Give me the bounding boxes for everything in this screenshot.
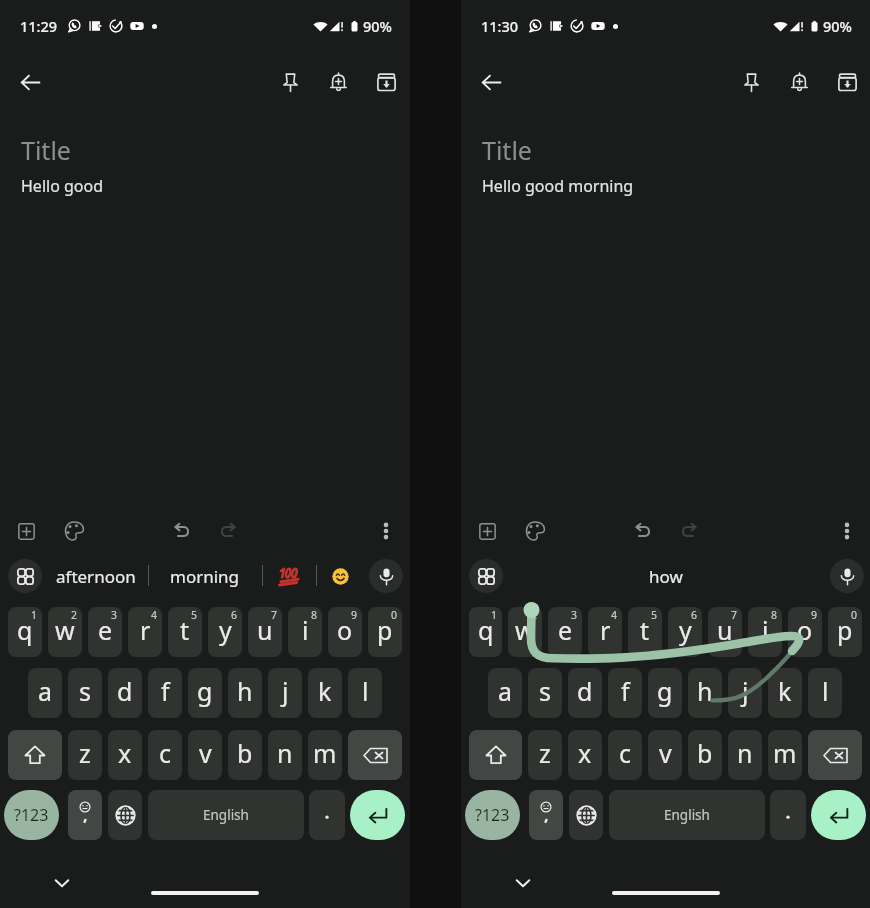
button[interactable]: Language <box>569 790 603 840</box>
button[interactable]: Emoji <box>68 790 102 840</box>
button[interactable]: Period <box>309 790 345 840</box>
button[interactable]: n <box>728 730 762 780</box>
button[interactable]: z <box>68 730 102 780</box>
button[interactable]: u <box>708 607 742 657</box>
button[interactable]: u <box>248 607 282 657</box>
button[interactable]: Backspace <box>348 730 402 780</box>
button[interactable]: More options <box>825 509 869 553</box>
button[interactable]: h <box>688 668 722 718</box>
button[interactable]: x <box>568 730 602 780</box>
button[interactable]: Archive <box>825 60 869 104</box>
staticText: p <box>837 613 853 647</box>
staticText: 7 <box>731 608 738 622</box>
button[interactable]: i <box>288 607 322 657</box>
button[interactable]: Pin <box>729 60 773 104</box>
button[interactable]: Backspace <box>808 730 862 780</box>
button[interactable]: k <box>768 668 802 718</box>
button[interactable]: b <box>228 730 262 780</box>
button[interactable]: o <box>328 607 362 657</box>
button[interactable]: Enter <box>811 790 866 840</box>
button[interactable]: Hundred points emoji <box>278 564 302 588</box>
button[interactable]: p <box>368 607 402 657</box>
button[interactable]: r <box>588 607 622 657</box>
button[interactable]: Smiling face emoji <box>331 567 350 586</box>
button[interactable]: q <box>8 607 42 657</box>
button[interactable]: v <box>648 730 682 780</box>
button[interactable]: y <box>668 607 702 657</box>
button[interactable]: f <box>608 668 642 718</box>
button[interactable]: x <box>108 730 142 780</box>
button[interactable]: r <box>128 607 162 657</box>
button[interactable]: l <box>348 668 382 718</box>
button[interactable]: Reminder <box>777 60 821 104</box>
button[interactable]: Theme <box>513 509 557 553</box>
button[interactable]: s <box>528 668 562 718</box>
button[interactable]: afternoon <box>56 565 136 588</box>
button[interactable]: Archive <box>364 60 408 104</box>
button[interactable]: morning <box>170 565 240 588</box>
button[interactable]: i <box>748 607 782 657</box>
button[interactable]: Period <box>770 790 806 840</box>
button[interactable]: g <box>188 668 222 718</box>
button[interactable]: s <box>68 668 102 718</box>
button[interactable]: Shift <box>8 730 62 780</box>
button[interactable]: Theme <box>52 509 96 553</box>
button[interactable]: f <box>148 668 182 718</box>
button[interactable]: e <box>548 607 582 657</box>
button[interactable]: ?123 <box>4 790 59 840</box>
button[interactable]: Language <box>108 790 142 840</box>
button[interactable]: Redo <box>206 509 250 553</box>
button[interactable]: Add <box>4 509 48 553</box>
staticText: a <box>498 674 513 708</box>
button[interactable]: Undo <box>160 509 204 553</box>
button[interactable]: a <box>28 668 62 718</box>
button[interactable]: ?123 <box>465 790 520 840</box>
button[interactable]: Hide keyboard <box>505 865 541 901</box>
button[interactable]: d <box>568 668 602 718</box>
button[interactable]: z <box>528 730 562 780</box>
button[interactable]: Enter <box>350 790 405 840</box>
button[interactable]: c <box>148 730 182 780</box>
button[interactable]: k <box>308 668 342 718</box>
button[interactable]: g <box>648 668 682 718</box>
button[interactable]: o <box>788 607 822 657</box>
button[interactable]: Shift <box>469 730 522 780</box>
button[interactable]: English <box>609 790 765 840</box>
button[interactable]: d <box>108 668 142 718</box>
button[interactable]: y <box>208 607 242 657</box>
button[interactable]: e <box>88 607 122 657</box>
button[interactable]: a <box>488 668 522 718</box>
button[interactable]: p <box>828 607 862 657</box>
button[interactable]: Redo <box>667 509 711 553</box>
button[interactable]: j <box>728 668 762 718</box>
button[interactable]: v <box>188 730 222 780</box>
button[interactable]: Voice input <box>830 559 864 593</box>
button[interactable]: w <box>48 607 82 657</box>
button[interactable]: t <box>628 607 662 657</box>
button[interactable]: h <box>228 668 262 718</box>
button[interactable]: Emoji <box>529 790 563 840</box>
button[interactable]: m <box>308 730 342 780</box>
button[interactable]: t <box>168 607 202 657</box>
button[interactable]: English <box>148 790 304 840</box>
button[interactable]: n <box>268 730 302 780</box>
button[interactable]: Voice input <box>369 559 403 593</box>
button[interactable]: Undo <box>621 509 665 553</box>
button[interactable]: More options <box>364 509 408 553</box>
button[interactable]: w <box>508 607 542 657</box>
button[interactable]: Clipboard <box>8 559 42 593</box>
button[interactable]: Back <box>8 60 52 104</box>
button[interactable]: l <box>808 668 842 718</box>
button[interactable]: Pin <box>268 60 312 104</box>
button[interactable]: Back <box>469 60 513 104</box>
button[interactable]: c <box>608 730 642 780</box>
button[interactable]: Reminder <box>316 60 360 104</box>
button[interactable]: how <box>649 565 683 588</box>
button[interactable]: Add <box>465 509 509 553</box>
button[interactable]: b <box>688 730 722 780</box>
button[interactable]: q <box>469 607 502 657</box>
button[interactable]: j <box>268 668 302 718</box>
button[interactable]: Hide keyboard <box>44 865 80 901</box>
button[interactable]: m <box>768 730 802 780</box>
button[interactable]: Clipboard <box>469 559 503 593</box>
